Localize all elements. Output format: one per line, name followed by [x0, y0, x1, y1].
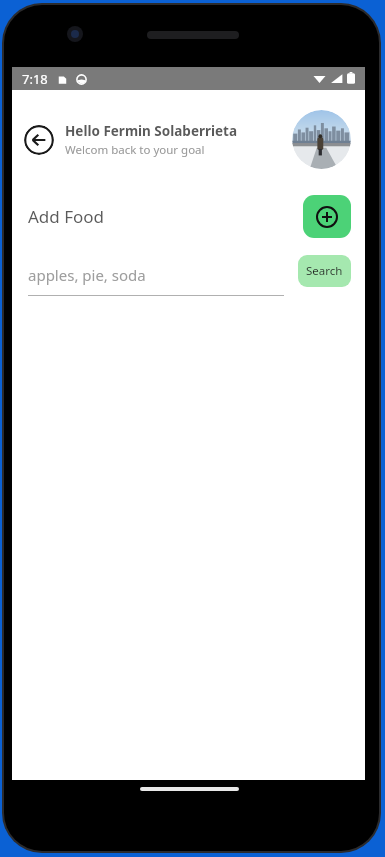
button[interactable]: Search: [298, 255, 351, 287]
staticText: Hello Fermin Solaberrieta: [65, 122, 238, 140]
staticText: Add Food: [28, 205, 105, 228]
staticText: apples, pie, soda: [28, 265, 146, 285]
staticText: 7:18: [22, 70, 48, 88]
staticText: Search: [306, 263, 343, 279]
button[interactable]: Add food: [303, 195, 351, 238]
button[interactable]: Back: [24, 125, 54, 155]
button[interactable]: apples, pie, soda: [28, 265, 284, 296]
staticText: Welcom back to your goal: [65, 142, 205, 158]
button[interactable]: Profile: [292, 110, 351, 169]
